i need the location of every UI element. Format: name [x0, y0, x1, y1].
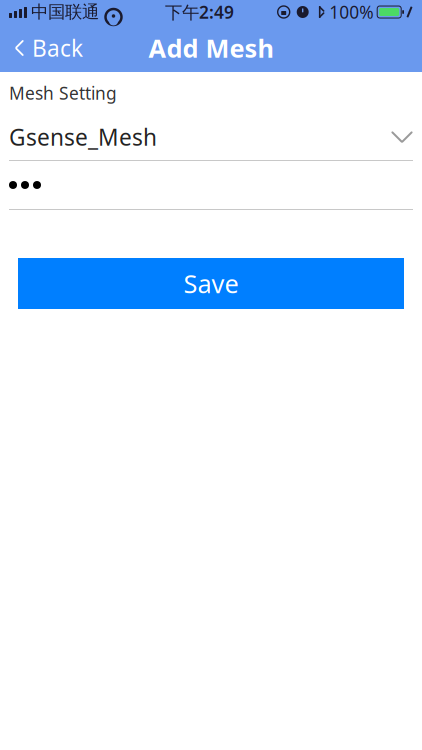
- staticText: Add Mesh: [148, 31, 273, 65]
- staticText: Back: [32, 33, 83, 63]
- staticText: 100%: [329, 0, 373, 23]
- button[interactable]: Gsense_Mesh: [0, 114, 422, 161]
- staticText: 下午2:49: [165, 0, 234, 23]
- button[interactable]: [0, 161, 422, 210]
- button[interactable]: Save: [18, 258, 404, 309]
- button[interactable]: Back: [0, 26, 97, 70]
- staticText: Mesh Setting: [9, 81, 117, 104]
- staticText: 中国联通: [31, 1, 99, 23]
- staticText: Save: [183, 267, 238, 300]
- staticText: Gsense_Mesh: [9, 122, 157, 152]
